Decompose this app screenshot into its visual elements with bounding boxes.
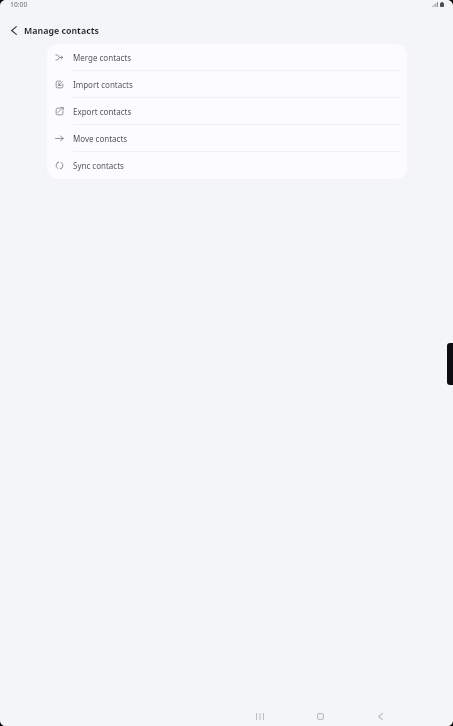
button[interactable]: Sync contacts xyxy=(47,152,407,179)
button[interactable]: Navigate up xyxy=(3,18,25,43)
staticText: Move contacts xyxy=(73,133,128,144)
staticText: 10:00 xyxy=(10,0,28,9)
staticText: Export contacts xyxy=(73,106,132,117)
button[interactable]: Recents xyxy=(230,705,290,726)
button[interactable]: Home xyxy=(290,705,350,726)
button[interactable]: Back xyxy=(350,705,410,726)
staticText: Manage contacts xyxy=(24,25,99,37)
button[interactable]: Merge contacts xyxy=(47,44,407,71)
button[interactable]: Import contacts xyxy=(47,71,407,98)
staticText: Import contacts xyxy=(73,79,133,90)
staticText: Merge contacts xyxy=(73,52,132,63)
staticText: Sync contacts xyxy=(73,160,124,171)
button[interactable]: Move contacts xyxy=(47,125,407,152)
button[interactable]: Export contacts xyxy=(47,98,407,125)
